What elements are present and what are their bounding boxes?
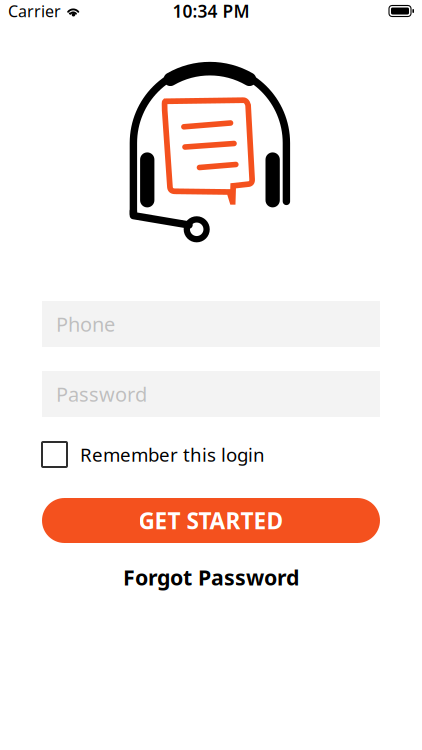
staticText: Remember this login <box>80 442 265 467</box>
staticText: Forgot Password <box>123 563 299 591</box>
button[interactable]: Password <box>42 371 380 417</box>
staticText: Password <box>56 381 147 407</box>
button[interactable]: GET STARTED <box>42 498 380 543</box>
button[interactable]: Remember this login <box>42 442 380 467</box>
staticText: Phone <box>56 311 115 337</box>
button[interactable]: Forgot Password <box>42 563 380 591</box>
button[interactable]: Phone <box>42 301 380 347</box>
staticText: Carrier <box>8 0 61 22</box>
staticText: GET STARTED <box>138 505 283 535</box>
staticText: 10:34 PM <box>172 0 249 22</box>
